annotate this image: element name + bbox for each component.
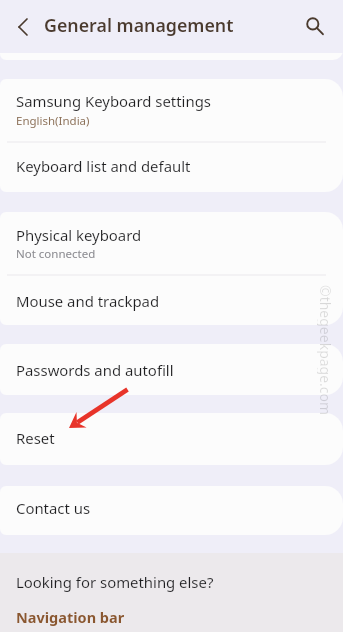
staticText: Physical keyboard (16, 225, 142, 245)
staticText: Looking for something else? (16, 572, 214, 592)
button[interactable] (0, 486, 343, 535)
button[interactable] (0, 142, 343, 192)
button[interactable]: Back (4, 7, 44, 47)
staticText: General management (44, 13, 234, 37)
button[interactable] (0, 212, 343, 274)
staticText: ©thegeekpage.com (317, 285, 335, 416)
button[interactable] (0, 344, 343, 395)
staticText: Mouse and trackpad (16, 291, 160, 311)
staticText: Passwords and autofill (16, 360, 174, 380)
staticText: English(India) (16, 113, 90, 129)
button[interactable] (0, 413, 343, 465)
staticText: Samsung Keyboard settings (16, 91, 211, 111)
staticText: Contact us (16, 498, 91, 518)
staticText: Keyboard list and default (16, 156, 191, 176)
staticText: Not connected (16, 246, 96, 262)
button[interactable] (0, 275, 343, 325)
button[interactable] (0, 79, 343, 141)
staticText: Reset (16, 428, 55, 448)
button[interactable]: Search (296, 7, 336, 47)
button[interactable]: Navigation bar (16, 607, 125, 627)
